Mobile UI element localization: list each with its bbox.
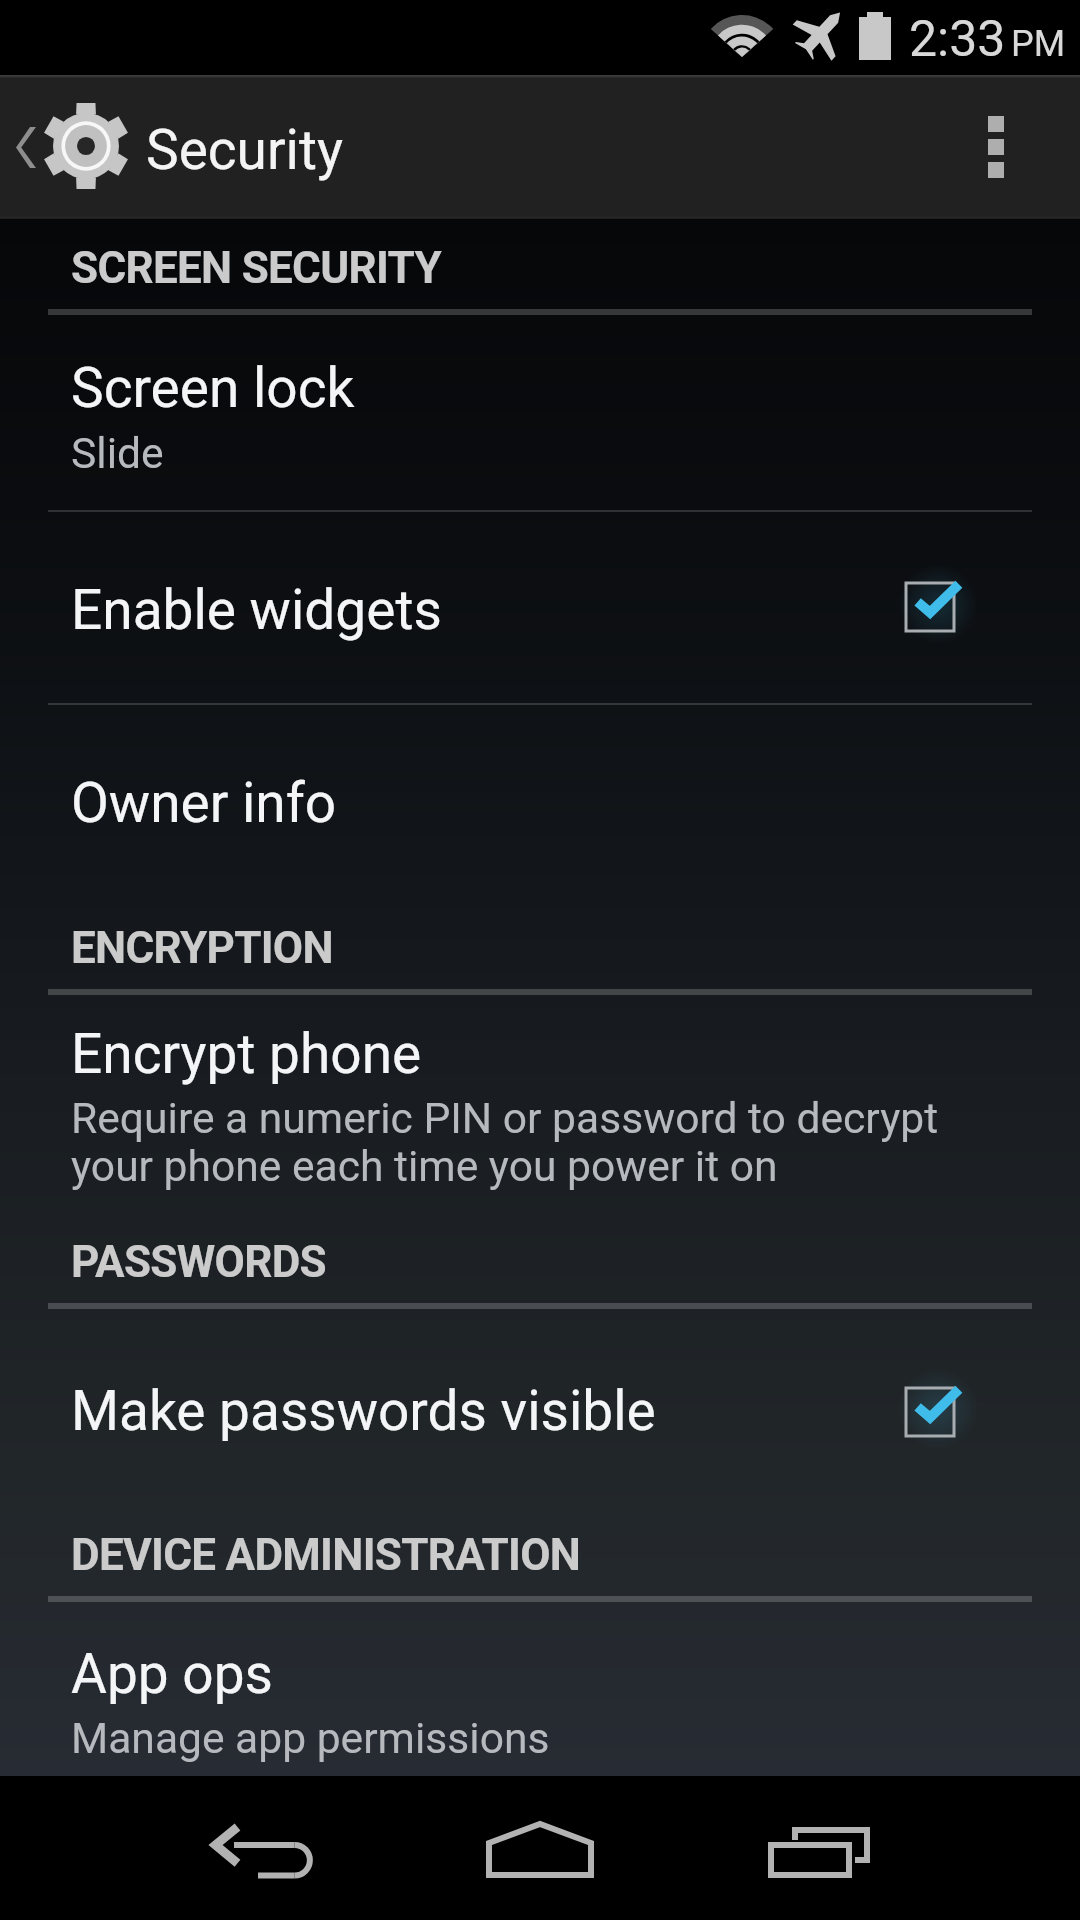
staticText: Make passwords visible: [71, 1379, 656, 1443]
button[interactable]: More options: [912, 75, 1080, 219]
button[interactable]: [0, 512, 1080, 703]
button[interactable]: Recent apps: [706, 1776, 932, 1920]
staticText: Require a numeric PIN or password to dec…: [71, 1093, 961, 1192]
button[interactable]: [0, 75, 620, 219]
staticText: Manage app permissions: [71, 1713, 550, 1763]
button[interactable]: Home: [430, 1776, 650, 1920]
staticText: DEVICE ADMINISTRATION: [71, 1529, 581, 1581]
button[interactable]: [0, 315, 1080, 510]
staticText: PASSWORDS: [71, 1236, 326, 1288]
staticText: Screen lock: [71, 356, 355, 420]
button[interactable]: [0, 1602, 1080, 1776]
button[interactable]: [0, 705, 1080, 890]
staticText: PM: [1011, 23, 1066, 65]
button[interactable]: [0, 1309, 1080, 1504]
staticText: SCREEN SECURITY: [71, 242, 441, 294]
staticText: Security: [146, 118, 343, 182]
staticText: App ops: [71, 1642, 273, 1706]
staticText: Slide: [71, 428, 164, 478]
staticText: Enable widgets: [71, 578, 442, 642]
staticText: Owner info: [71, 771, 337, 835]
staticText: Encrypt phone: [71, 1022, 422, 1086]
staticText: ENCRYPTION: [71, 922, 333, 974]
button[interactable]: Back: [150, 1776, 376, 1920]
button[interactable]: [0, 995, 1080, 1200]
staticText: 2:33: [909, 10, 1006, 69]
